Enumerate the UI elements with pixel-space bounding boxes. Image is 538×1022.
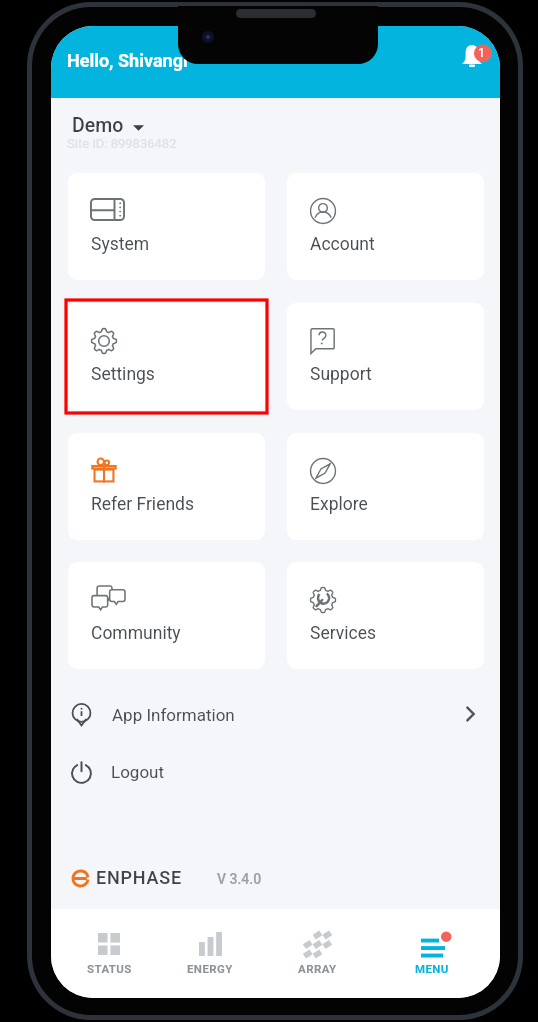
staticText: System xyxy=(91,234,150,255)
staticText: Account xyxy=(310,234,375,255)
staticText: App Information xyxy=(112,705,235,725)
button[interactable]: Explore xyxy=(287,433,484,540)
staticText: Services xyxy=(310,623,376,644)
staticText: Site ID: 899836482 xyxy=(67,136,177,151)
button[interactable]: ARRAY xyxy=(273,913,361,991)
button[interactable]: System xyxy=(68,173,265,280)
button[interactable]: Settings xyxy=(68,303,265,410)
staticText: Demo xyxy=(72,114,124,137)
staticText: ARRAY xyxy=(298,962,337,975)
button[interactable]: Support xyxy=(287,303,484,410)
staticText: Logout xyxy=(111,762,165,782)
staticText: 1 xyxy=(478,46,485,60)
staticText: Community xyxy=(91,623,181,644)
staticText: Settings xyxy=(91,364,155,385)
button[interactable]: App Information xyxy=(51,686,500,744)
button[interactable]: Logout xyxy=(51,744,500,802)
button[interactable]: ENERGY xyxy=(166,913,254,991)
staticText: Explore xyxy=(310,494,368,515)
button[interactable]: Refer Friends xyxy=(68,433,265,540)
staticText: V 3.4.0 xyxy=(217,871,262,887)
button[interactable]: STATUS xyxy=(65,913,153,991)
staticText: Hello, Shivangi xyxy=(67,50,188,71)
staticText: STATUS xyxy=(87,962,132,975)
button[interactable]: Services xyxy=(287,562,484,669)
staticText: Refer Friends xyxy=(91,494,194,515)
staticText: ENERGY xyxy=(187,962,233,975)
button[interactable]: Account xyxy=(287,173,484,280)
staticText: ENPHASE xyxy=(96,867,182,888)
button[interactable]: Notifications xyxy=(447,28,497,78)
button[interactable]: MENU xyxy=(388,913,476,991)
button[interactable]: Demo xyxy=(72,114,144,137)
staticText: Support xyxy=(310,364,372,385)
button[interactable]: Community xyxy=(68,562,265,669)
staticText: MENU xyxy=(415,962,449,975)
